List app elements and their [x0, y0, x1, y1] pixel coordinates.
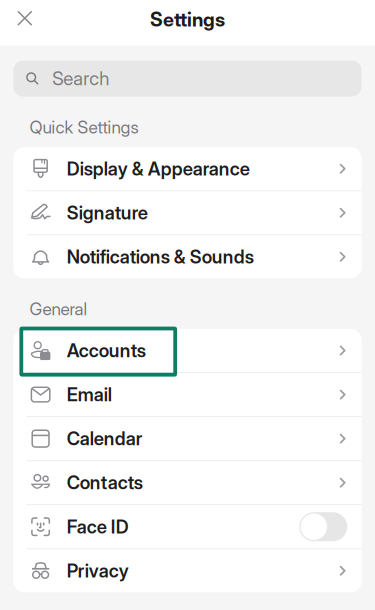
button[interactable]: Contacts — [13, 461, 362, 504]
button[interactable]: Privacy — [13, 549, 362, 592]
staticText: Calendar — [67, 427, 143, 450]
staticText: Notifications & Sounds — [67, 246, 254, 268]
button[interactable]: Notifications & Sounds — [13, 235, 362, 278]
button[interactable]: Face ID — [13, 505, 362, 548]
staticText: Face ID — [67, 516, 129, 538]
staticText: General — [30, 298, 88, 319]
button[interactable]: Display & Appearance — [13, 147, 362, 190]
staticText: Email — [67, 383, 112, 406]
staticText: Search — [52, 67, 109, 90]
button[interactable]: Email — [13, 373, 362, 416]
staticText: Accounts — [67, 339, 146, 362]
staticText: Privacy — [67, 560, 129, 582]
button[interactable]: Close — [7, 0, 43, 36]
button[interactable]: Signature — [13, 191, 362, 234]
button[interactable]: Search — [13, 60, 362, 96]
staticText: Contacts — [67, 471, 143, 494]
button[interactable]: Accounts — [13, 329, 362, 372]
staticText: Display & Appearance — [67, 158, 250, 180]
button[interactable]: Calendar — [13, 417, 362, 460]
staticText: Settings — [150, 7, 225, 31]
staticText: Quick Settings — [30, 117, 139, 138]
staticText: Signature — [67, 202, 148, 224]
